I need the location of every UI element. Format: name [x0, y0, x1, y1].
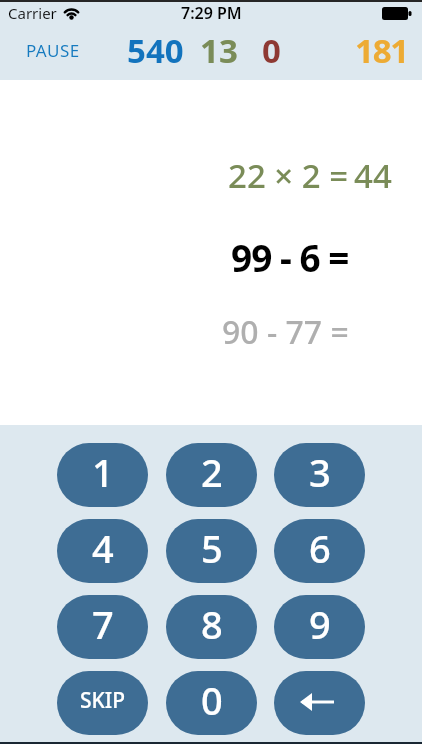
staticText: Carrier	[8, 3, 57, 23]
staticText: 7	[92, 598, 114, 650]
staticText: 22 × 2 =	[228, 153, 349, 193]
staticText: 4	[92, 522, 114, 574]
staticText: 1	[92, 446, 114, 498]
staticText: SKIP	[80, 686, 126, 715]
button[interactable]: 2	[166, 443, 257, 507]
button[interactable]: 1	[57, 443, 148, 507]
staticText: 5	[201, 522, 223, 574]
staticText: 8	[201, 598, 223, 650]
staticText: 7:29 PM	[181, 2, 242, 24]
staticText: 3	[309, 446, 331, 498]
staticText: 0	[201, 674, 223, 726]
button[interactable]: 7	[57, 595, 148, 659]
button[interactable]: 6	[274, 519, 365, 583]
button[interactable]: 8	[166, 595, 257, 659]
button[interactable]: 5	[166, 519, 257, 583]
staticText: 2	[201, 446, 223, 498]
staticText: 9	[309, 598, 331, 650]
staticText: 44	[354, 153, 392, 193]
button[interactable]: 4	[57, 519, 148, 583]
staticText: 540	[127, 28, 184, 73]
staticText: 0	[262, 28, 281, 73]
button[interactable]	[274, 671, 365, 735]
button[interactable]: SKIP	[57, 671, 148, 735]
button[interactable]: 9	[274, 595, 365, 659]
button[interactable]: 0	[166, 671, 257, 735]
staticText: PAUSE	[26, 39, 80, 62]
button[interactable]: PAUSE	[22, 35, 84, 66]
staticText: 13	[200, 28, 238, 73]
staticText: 181	[355, 28, 409, 73]
staticText: 90 - 77 =	[222, 310, 349, 350]
staticText: 6	[309, 522, 331, 574]
button[interactable]: 3	[274, 443, 365, 507]
staticText: 99 - 6 =	[231, 232, 349, 272]
